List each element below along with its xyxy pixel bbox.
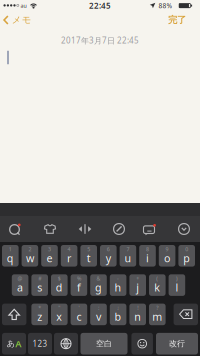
- staticText: 88%: [158, 1, 172, 10]
- button[interactable]: -: [110, 274, 126, 296]
- button[interactable]: 手書き: [113, 223, 125, 235]
- button[interactable]: ": [51, 304, 68, 325]
- staticText: e: [46, 251, 52, 265]
- staticText: ;: [118, 304, 119, 311]
- staticText: v: [96, 309, 101, 324]
- button[interactable]: 0: [178, 245, 195, 267]
- staticText: m: [152, 309, 162, 324]
- button[interactable]: 4: [61, 245, 77, 267]
- staticText: n: [134, 309, 141, 324]
- button[interactable]: ;: [110, 304, 126, 325]
- button[interactable]: 次のキーボード: [54, 333, 78, 354]
- staticText: y: [106, 251, 111, 265]
- staticText: 9: [166, 246, 169, 253]
- staticText: p: [183, 251, 190, 265]
- button[interactable]: Simeji メニュー: [8, 222, 22, 236]
- button[interactable]: 空白: [80, 333, 127, 354]
- staticText: c: [76, 309, 81, 324]
- staticText: $: [58, 275, 61, 282]
- staticText: 完了: [168, 14, 186, 26]
- staticText: o: [164, 251, 170, 265]
- staticText: あ: [7, 339, 15, 349]
- button[interactable]: (: [149, 274, 166, 296]
- staticText: q: [7, 251, 14, 265]
- staticText: z: [37, 309, 42, 324]
- staticText: 5: [87, 246, 90, 253]
- staticText: 1: [9, 246, 12, 253]
- staticText: @: [18, 275, 23, 282]
- button[interactable]: !: [129, 304, 146, 325]
- button[interactable]: ?: [149, 304, 166, 325]
- button[interactable]: 絵文字: [131, 333, 153, 354]
- staticText: t: [87, 251, 91, 265]
- button[interactable]: *: [31, 304, 48, 325]
- staticText: a: [17, 280, 23, 294]
- staticText: +: [136, 275, 139, 282]
- button[interactable]: 7: [120, 245, 136, 267]
- button[interactable]: $: [51, 274, 68, 296]
- button[interactable]: 2: [22, 245, 38, 267]
- staticText: -: [117, 275, 119, 282]
- button[interactable]: 123: [28, 333, 52, 354]
- button[interactable]: メモ（戻る）: [3, 13, 32, 27]
- staticText: %: [77, 275, 81, 282]
- staticText: u: [124, 251, 131, 265]
- staticText: 3: [48, 246, 51, 253]
- staticText: b: [115, 309, 122, 324]
- staticText: s: [37, 280, 42, 294]
- staticText: d: [56, 280, 63, 294]
- button[interactable]: カーソル移動: [78, 224, 91, 234]
- staticText: 123: [32, 338, 47, 349]
- button[interactable]: 5: [80, 245, 97, 267]
- button[interactable]: 9: [159, 245, 175, 267]
- button[interactable]: +: [129, 274, 146, 296]
- button[interactable]: きせかえ: [44, 223, 55, 234]
- button[interactable]: &: [90, 274, 107, 296]
- button[interactable]: ': [71, 304, 87, 325]
- staticText: 7: [126, 246, 129, 253]
- staticText: ": [58, 304, 60, 311]
- staticText: r: [67, 251, 71, 265]
- staticText: ': [78, 304, 79, 311]
- button[interactable]: #: [31, 274, 48, 296]
- staticText: g: [95, 280, 102, 294]
- staticText: f: [77, 280, 81, 294]
- staticText: !: [137, 304, 138, 311]
- staticText: ?: [156, 304, 158, 311]
- staticText: 8: [146, 246, 149, 253]
- staticText: (: [156, 275, 158, 282]
- staticText: 空白: [96, 339, 112, 349]
- staticText: #: [38, 275, 41, 282]
- button[interactable]: 1: [2, 245, 19, 267]
- button[interactable]: キーボード設定: [143, 222, 157, 235]
- button[interactable]: :: [90, 304, 107, 325]
- staticText: 0: [185, 246, 188, 253]
- staticText: x: [56, 309, 62, 324]
- staticText: au: [20, 2, 26, 9]
- button[interactable]: 改行: [156, 333, 198, 354]
- button[interactable]: 8: [139, 245, 156, 267]
- staticText: 2: [28, 246, 31, 253]
- button[interactable]: 3: [41, 245, 58, 267]
- staticText: ): [176, 275, 178, 282]
- button[interactable]: @: [12, 274, 28, 296]
- button[interactable]: 6: [100, 245, 117, 267]
- staticText: i: [146, 251, 149, 265]
- staticText: l: [175, 280, 178, 294]
- button[interactable]: シフト: [2, 304, 26, 325]
- staticText: 22:45: [89, 0, 111, 11]
- staticText: 改行: [169, 339, 185, 349]
- staticText: &: [96, 275, 100, 282]
- button[interactable]: %: [71, 274, 87, 296]
- staticText: 4: [68, 246, 71, 253]
- staticText: A: [15, 337, 21, 350]
- staticText: j: [136, 280, 139, 294]
- button[interactable]: あ: [2, 333, 26, 354]
- button[interactable]: 完了: [168, 14, 186, 26]
- staticText: 6: [107, 246, 110, 253]
- button[interactable]: 削除: [174, 304, 198, 325]
- staticText: *: [38, 304, 41, 311]
- staticText: :: [98, 304, 99, 311]
- button[interactable]: ): [169, 274, 185, 296]
- button[interactable]: キーボードを閉じる: [178, 223, 190, 235]
